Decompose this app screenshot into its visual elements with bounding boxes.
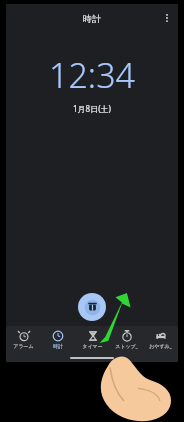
button[interactable]: ストップ_ (110, 329, 143, 350)
button[interactable]: アラーム (7, 329, 40, 349)
staticText: 時計 (83, 13, 101, 24)
button[interactable]: Add alarm (78, 293, 106, 321)
staticText: タイマー (82, 343, 103, 349)
button[interactable]: More options (159, 10, 175, 26)
staticText: 1月8日(土) (73, 103, 111, 114)
staticText: 時計 (53, 343, 63, 349)
staticText: ストップ_ (115, 343, 138, 350)
staticText: 12:34 (49, 52, 135, 98)
button[interactable]: おやすみ_ (144, 329, 177, 350)
button[interactable]: 時計 (41, 329, 74, 349)
staticText: おやすみ_ (149, 343, 172, 350)
button[interactable]: タイマー (76, 329, 109, 349)
staticText: アラーム (13, 343, 34, 349)
